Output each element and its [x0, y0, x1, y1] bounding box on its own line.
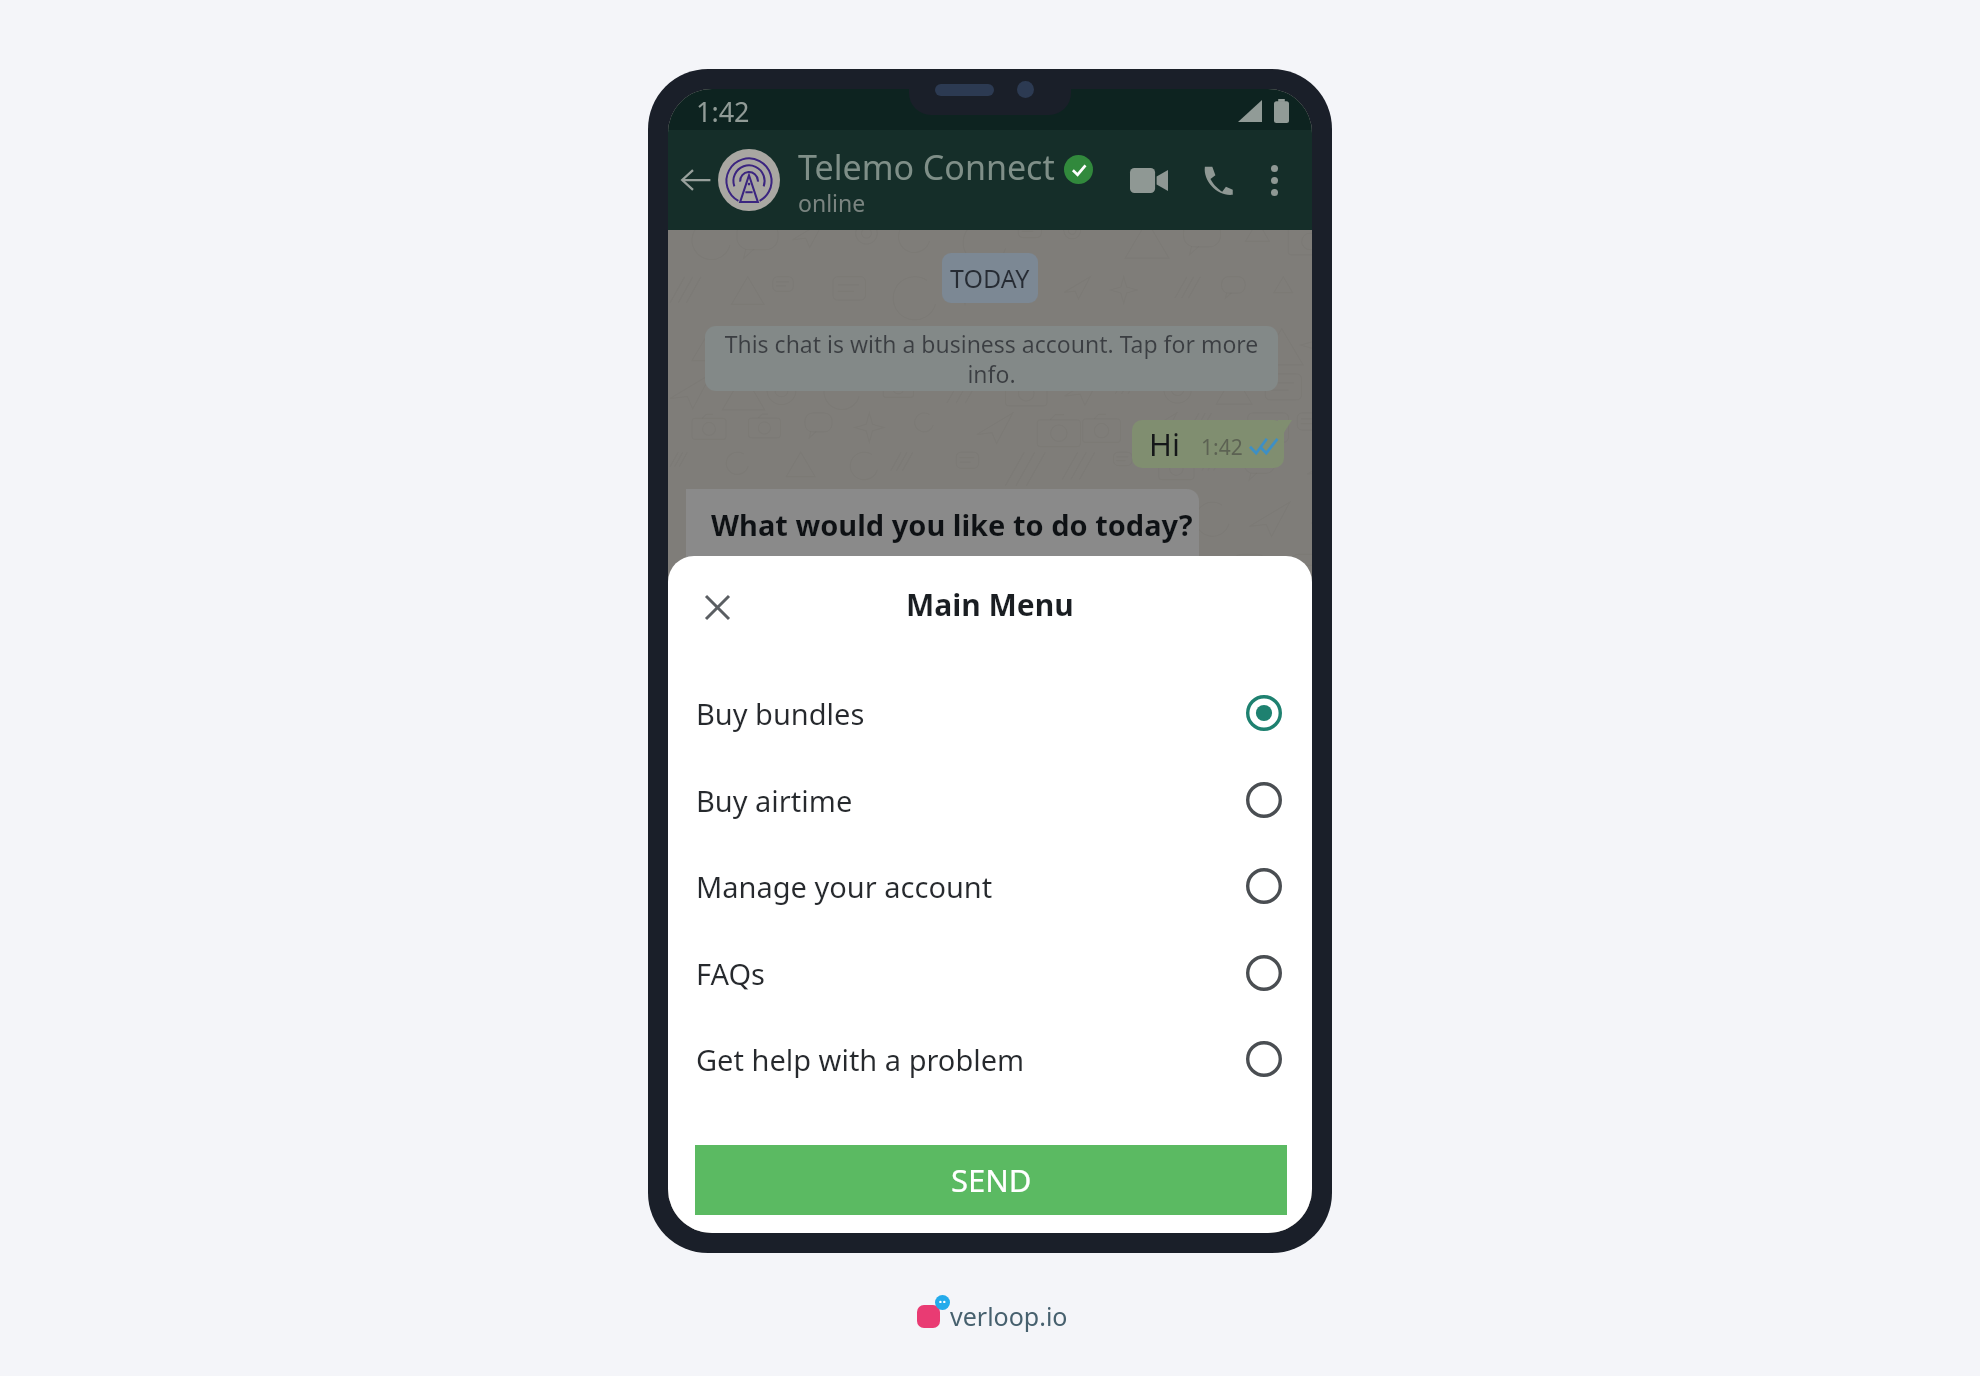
button[interactable]: Manage your account	[668, 843, 1312, 929]
button[interactable]: Buy airtime	[668, 757, 1312, 843]
staticText: 1:42	[696, 93, 750, 130]
staticText: Buy bundles	[696, 694, 865, 733]
button[interactable]: FAQs	[668, 930, 1312, 1016]
staticText: Get help with a problem	[696, 1040, 1025, 1079]
button[interactable]: Close	[692, 582, 742, 632]
button[interactable]: Voice call	[1192, 154, 1244, 206]
staticText: FAQs	[696, 954, 765, 993]
staticText: 1:42	[1201, 433, 1243, 462]
button[interactable]: Back	[672, 156, 720, 204]
button[interactable]: Buy bundles	[668, 670, 1312, 756]
staticText: TODAY	[950, 261, 1030, 295]
staticText: SEND	[951, 1159, 1032, 1201]
staticText: Hi	[1149, 423, 1180, 465]
staticText: verloop.io	[950, 1299, 1068, 1333]
staticText: Manage your account	[696, 867, 993, 906]
button[interactable]: This chat is with a business account. Ta…	[705, 326, 1278, 391]
button[interactable]: More options	[1251, 157, 1297, 203]
button[interactable]: SEND	[695, 1145, 1287, 1215]
staticText: online	[798, 187, 866, 218]
staticText: This chat is with a business account. Ta…	[710, 328, 1273, 390]
staticText: Main Menu	[906, 584, 1074, 625]
staticText: What would you like to do today?	[711, 505, 1193, 544]
staticText: Buy airtime	[696, 781, 853, 820]
button[interactable]: Video call	[1123, 154, 1175, 206]
button[interactable]: Get help with a problem	[668, 1016, 1312, 1102]
staticText: Telemo Connect	[798, 144, 1055, 190]
